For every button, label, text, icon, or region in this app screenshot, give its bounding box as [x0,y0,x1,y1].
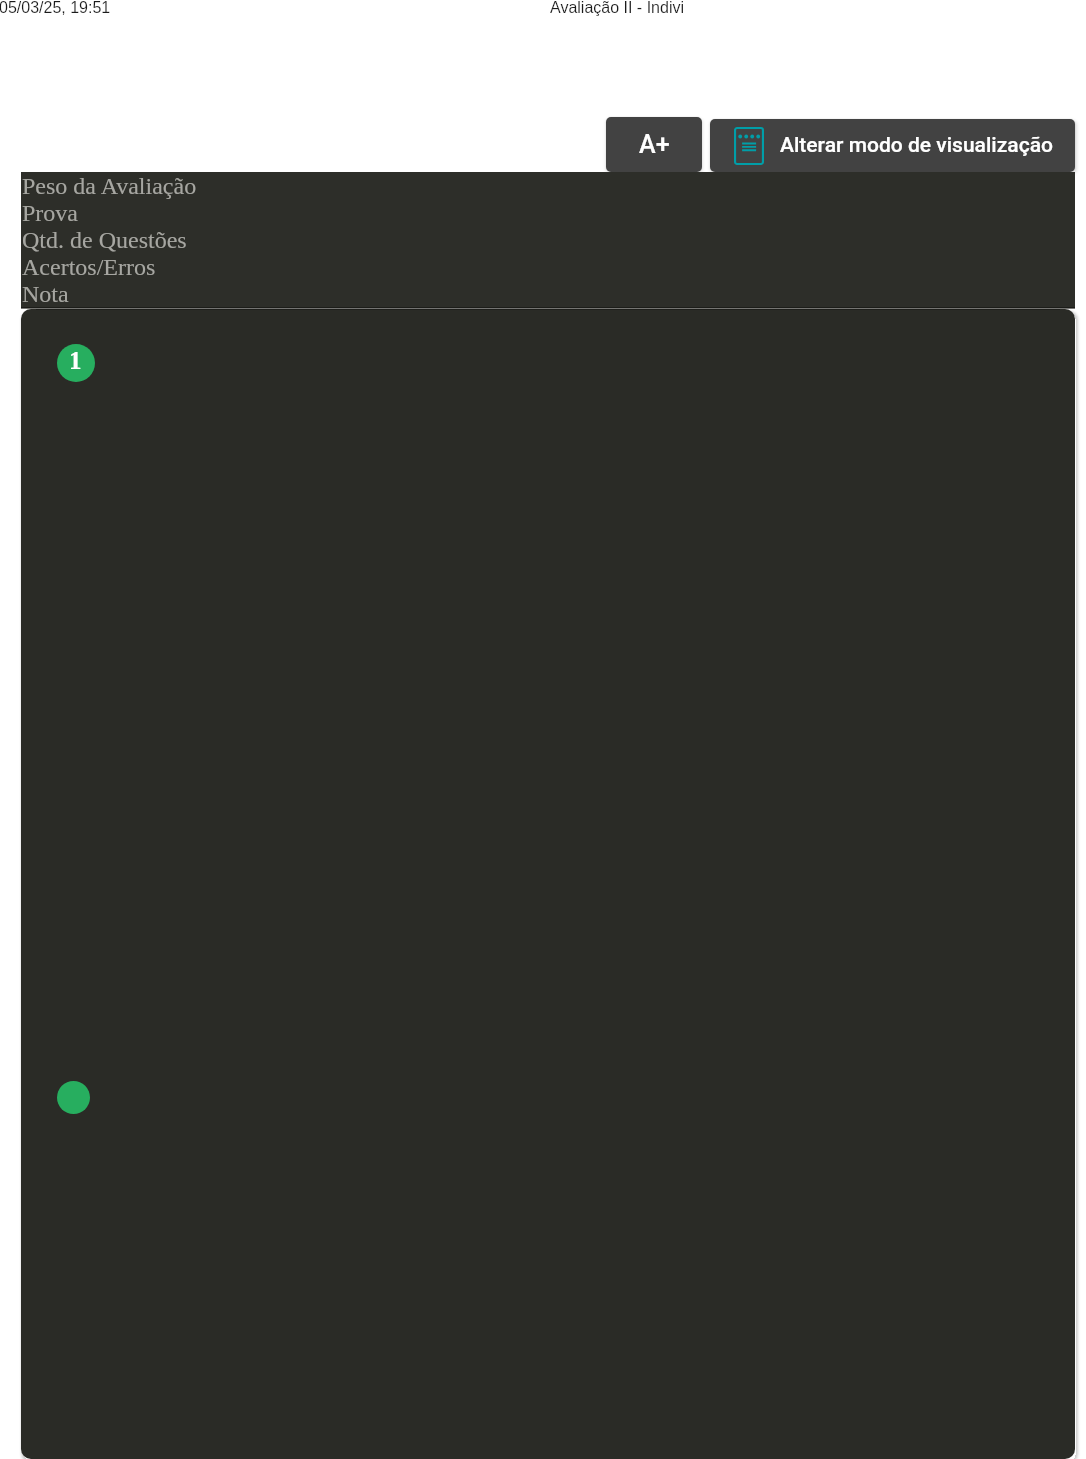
button[interactable]: Questão respondida [57,1081,90,1114]
staticText: Avaliação II - Indivi [550,0,684,17]
button[interactable]: A+ [606,117,702,172]
staticText: 1 [69,347,82,375]
staticText: Qtd. de Questões [22,227,187,254]
staticText: 05/03/25, 19:51 [0,0,111,17]
staticText: Peso da Avaliação [22,173,197,200]
button[interactable]: Alterar modo de visualização [710,119,1075,172]
other: Alterar modo de visualização [734,127,764,165]
staticText: Alterar modo de visualização [780,133,1053,158]
staticText: Prova [22,200,78,227]
staticText: Nota [22,281,69,308]
button[interactable]: 1 [21,309,1075,1459]
staticText: Acertos/Erros [22,254,156,281]
staticText: A+ [639,130,670,159]
button[interactable]: 1 [57,344,95,382]
